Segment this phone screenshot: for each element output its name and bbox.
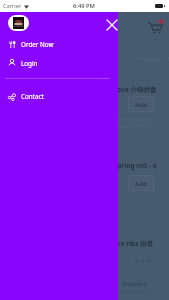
staticText: box 什锦拼盘 xyxy=(117,85,157,94)
staticText: Order Now xyxy=(21,40,54,49)
staticText: Add xyxy=(135,101,147,109)
button[interactable]: Close menu xyxy=(103,16,120,33)
button[interactable]: Add xyxy=(128,175,154,191)
staticText: Delivery xyxy=(123,280,147,288)
staticText: 4 pieces 四拼盘 xyxy=(115,123,151,130)
button[interactable]: Add xyxy=(128,96,154,112)
button[interactable]: Order Now xyxy=(0,37,118,51)
staticText: Login xyxy=(21,59,38,68)
button[interactable]: Cart xyxy=(147,19,163,35)
staticText: Carrier xyxy=(3,2,22,10)
staticText: Add xyxy=(135,180,147,188)
button[interactable]: Contact xyxy=(0,89,118,103)
button[interactable]: Login xyxy=(0,56,118,70)
staticText: Contact xyxy=(21,92,44,101)
staticText: are ribs 排骨 xyxy=(114,239,154,248)
staticText: 6:49 PM xyxy=(73,2,96,10)
staticText: spring roll - 4 xyxy=(114,161,157,170)
